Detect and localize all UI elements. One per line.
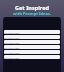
button[interactable]: Prompt idea	[4, 30, 60, 34]
button[interactable]: Prompt idea	[4, 40, 60, 44]
staticText: Prompt idea	[5, 51, 20, 54]
staticText: Prompt idea	[5, 41, 20, 44]
staticText: Prompt idea	[5, 56, 20, 59]
staticText: Prompt idea	[5, 36, 20, 39]
button[interactable]: Prompt idea	[4, 50, 60, 54]
button[interactable]: Prompt idea	[4, 35, 60, 39]
staticText: Prompt idea	[5, 46, 20, 49]
button[interactable]: Prompt idea	[4, 45, 60, 49]
staticText: with Prompt Ideas.	[0, 11, 64, 16]
staticText: Get Inspired	[0, 4, 64, 11]
staticText: Prompt idea	[5, 31, 20, 34]
button[interactable]: Prompt idea	[4, 55, 60, 59]
